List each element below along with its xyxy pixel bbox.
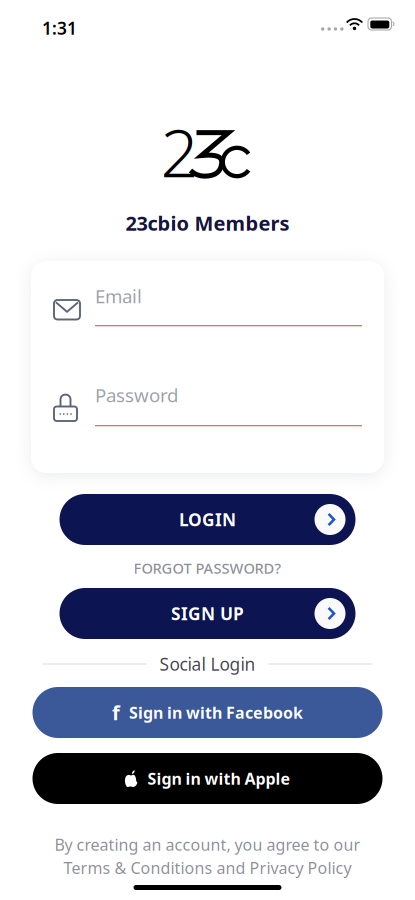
staticText: Email — [95, 284, 142, 308]
staticText: f — [112, 699, 120, 726]
staticText: 1:31 — [42, 16, 77, 39]
staticText: Sign in with Apple — [147, 768, 290, 789]
button[interactable]: SIGN UP — [59, 588, 355, 639]
button[interactable]: FORGOT PASSWORD? — [92, 557, 322, 579]
staticText: 2 — [160, 107, 198, 195]
staticText: Sign in with Facebook — [129, 702, 303, 723]
button[interactable]: Sign in with Apple — [32, 753, 382, 804]
staticText: Social Login — [159, 652, 255, 675]
staticText: SIGN UP — [171, 602, 244, 625]
staticText: FORGOT PASSWORD? — [133, 558, 281, 578]
staticText: By creating an account, you agree to our — [54, 834, 360, 855]
staticText: Terms & Conditions and Privacy Policy — [63, 857, 351, 878]
staticText: 23cbio Members — [125, 210, 289, 236]
staticText: Password — [95, 383, 178, 407]
button[interactable]: f — [32, 687, 382, 738]
button[interactable]: LOGIN — [59, 494, 355, 545]
staticText: LOGIN — [179, 508, 236, 531]
